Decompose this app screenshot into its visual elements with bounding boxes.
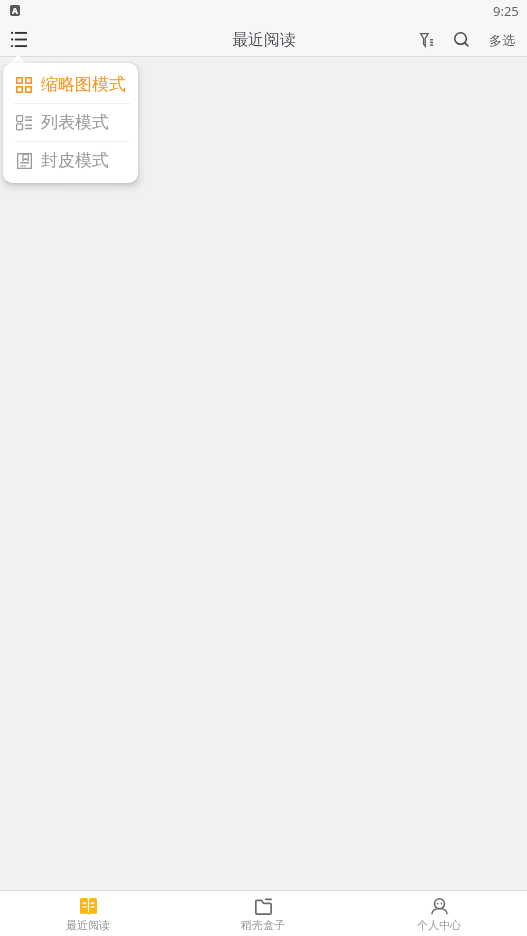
button[interactable]: 稻壳盒子 xyxy=(175,891,351,936)
button[interactable]: Filter xyxy=(409,22,444,57)
staticText: 多选 xyxy=(489,32,515,48)
staticText: A xyxy=(12,5,18,16)
staticText: 最近阅读 xyxy=(232,30,296,50)
button[interactable]: 封皮模式 xyxy=(3,142,138,179)
staticText: 个人中心 xyxy=(417,918,461,932)
staticText: 封皮模式 xyxy=(41,150,109,171)
button[interactable]: Search xyxy=(444,22,479,57)
button[interactable]: 缩略图模式 xyxy=(3,66,138,103)
staticText: 缩略图模式 xyxy=(41,74,126,95)
button[interactable]: 最近阅读 xyxy=(0,891,175,936)
staticText: 9:25 xyxy=(493,2,519,20)
button[interactable]: 个人中心 xyxy=(351,891,527,936)
staticText: 稻壳盒子 xyxy=(241,918,285,932)
staticText: 最近阅读 xyxy=(66,918,110,932)
button[interactable]: View mode xyxy=(0,22,38,57)
button[interactable]: 列表模式 xyxy=(3,104,138,141)
staticText: 列表模式 xyxy=(41,112,109,133)
button[interactable]: 多选 xyxy=(479,22,527,57)
